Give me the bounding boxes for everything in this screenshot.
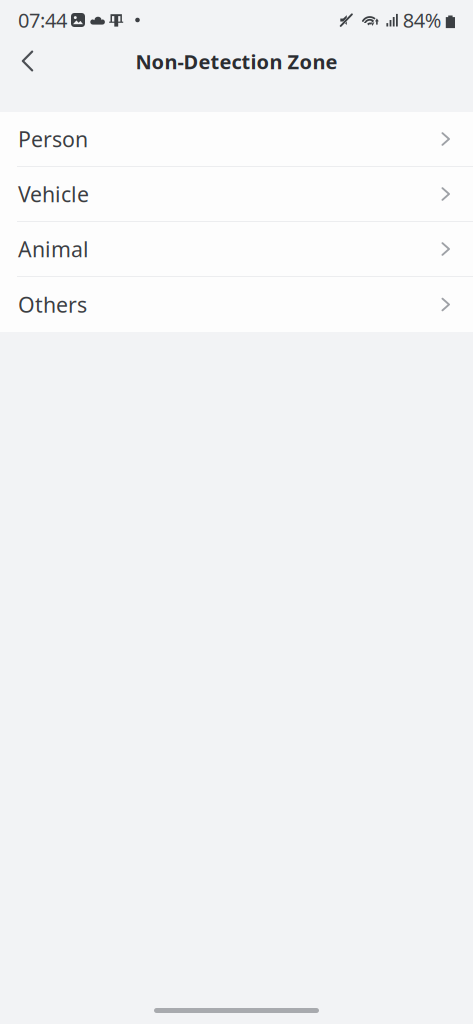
staticText: Animal [18, 235, 89, 263]
button[interactable]: Others [0, 277, 473, 332]
staticText: Others [18, 290, 87, 319]
staticText: 07:44 [18, 7, 67, 33]
button[interactable]: Person [0, 112, 473, 167]
staticText: Vehicle [18, 180, 89, 208]
button[interactable]: Animal [0, 222, 473, 277]
button[interactable]: Back [5, 39, 49, 83]
button[interactable]: Vehicle [0, 167, 473, 222]
staticText: Non-Detection Zone [135, 48, 337, 75]
staticText: Person [18, 125, 88, 153]
staticText: 84% [403, 7, 442, 33]
